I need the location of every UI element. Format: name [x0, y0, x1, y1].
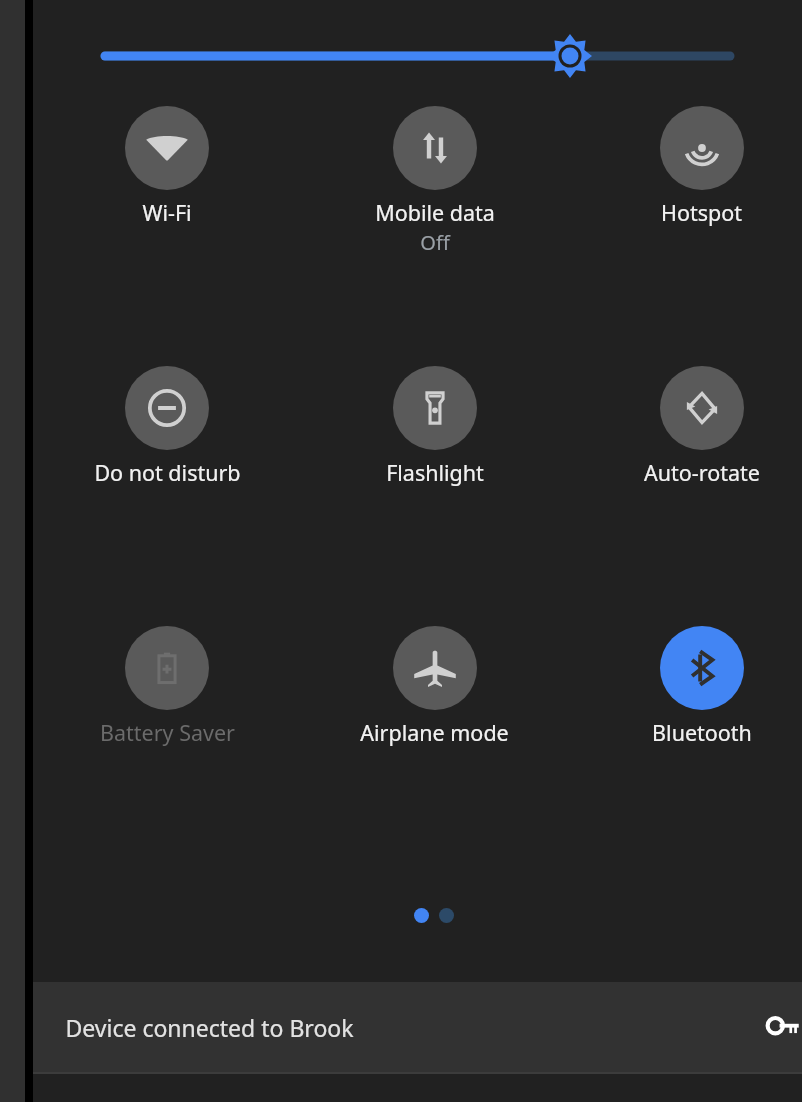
- staticText: Bluetooth: [652, 718, 752, 747]
- button[interactable]: Bluetooth: [568, 626, 802, 747]
- staticText: Flashlight: [386, 458, 484, 487]
- staticText: Hotspot: [661, 198, 742, 227]
- button[interactable]: Page 1: [414, 908, 429, 923]
- staticText: Off: [420, 229, 450, 256]
- staticText: Mobile data: [375, 198, 495, 227]
- staticText: Auto-rotate: [644, 458, 760, 487]
- button[interactable]: Mobile data: [301, 106, 568, 256]
- staticText: Wi-Fi: [142, 198, 192, 227]
- staticText: Airplane mode: [360, 718, 509, 747]
- button[interactable]: Auto-rotate: [568, 366, 802, 487]
- button[interactable]: Flashlight: [301, 366, 568, 487]
- button[interactable]: Wi-Fi: [33, 106, 301, 227]
- button[interactable]: Page 2: [439, 908, 454, 923]
- staticText: Battery Saver: [100, 718, 235, 747]
- button[interactable]: Brightness: [33, 20, 802, 92]
- button[interactable]: Battery Saver: [33, 626, 301, 747]
- staticText: Do not disturb: [94, 458, 241, 487]
- button[interactable]: VPN settings: [761, 1005, 802, 1049]
- button[interactable]: Do not disturb: [33, 366, 301, 487]
- staticText: Device connected to Brook: [65, 1012, 354, 1043]
- button[interactable]: Device connected to Brook: [33, 982, 802, 1072]
- button[interactable]: Hotspot: [568, 106, 802, 227]
- button[interactable]: Airplane mode: [301, 626, 568, 747]
